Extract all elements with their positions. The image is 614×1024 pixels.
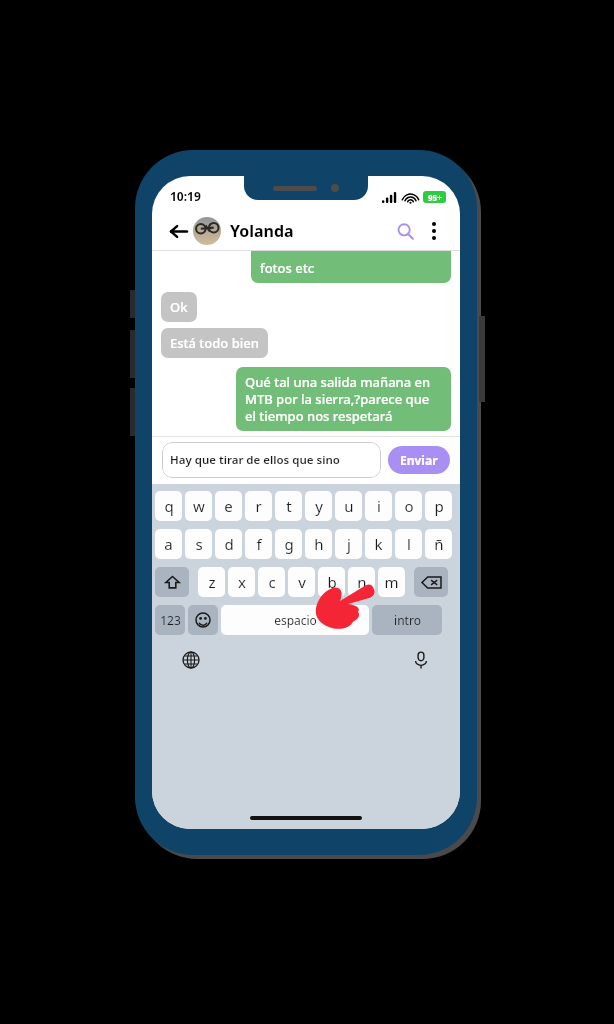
button[interactable] [155,567,189,597]
staticText: f [256,534,262,554]
staticText: p [434,496,444,516]
button[interactable]: f [245,529,272,559]
button[interactable]: w [185,491,212,521]
staticText: espacio [274,612,317,628]
button[interactable]: x [228,567,255,597]
button[interactable]: 123 [155,605,185,635]
staticText: b [327,572,337,592]
button[interactable]: a [155,529,182,559]
button[interactable]: z [198,567,225,597]
button[interactable]: g [275,529,302,559]
staticText: g [284,534,294,554]
button[interactable]: v [288,567,315,597]
button[interactable]: p [425,491,452,521]
button[interactable]: intro [372,605,442,635]
staticText: n [357,572,367,592]
staticText: h [314,534,324,554]
staticText: k [374,534,383,554]
staticText: fotos etc [260,259,315,277]
button[interactable]: b [318,567,345,597]
staticText: Está todo bien [170,334,259,352]
button[interactable]: n [348,567,375,597]
button[interactable]: h [305,529,332,559]
staticText: w [193,496,205,516]
staticText: Ok [170,298,188,316]
button[interactable]: q [155,491,182,521]
staticText: 95+ [428,192,442,203]
button[interactable]: Qué tal una salida mañana en MTB por la … [236,367,451,431]
button[interactable]: Hay que tirar de ellos que sino [162,442,381,478]
button[interactable]: Enviar [388,446,450,474]
staticText: x [238,572,246,592]
button[interactable]: y [305,491,332,521]
staticText: j [347,534,351,554]
staticText: u [344,496,354,516]
staticText: y [315,496,323,516]
button[interactable]: ñ [425,529,452,559]
button[interactable]: m [378,567,405,597]
staticText: t [286,496,292,516]
button[interactable]: c [258,567,285,597]
button[interactable]: i [365,491,392,521]
staticText: s [195,534,203,554]
button[interactable]: Search [391,217,419,245]
staticText: o [404,496,414,516]
button[interactable]: espacio [221,605,369,635]
staticText: v [298,572,306,592]
button[interactable]: Profile photo [193,217,221,245]
button[interactable]: e [215,491,242,521]
button[interactable]: Ok [161,292,197,322]
button[interactable]: d [215,529,242,559]
staticText: z [208,572,216,592]
button[interactable] [188,605,218,635]
staticText: i [377,496,381,516]
staticText: a [164,534,173,554]
button[interactable]: Está todo bien [161,328,268,358]
staticText: Hay que tirar de ellos que sino [170,452,340,468]
staticText: intro [394,612,421,628]
staticText: Qué tal una salida mañana en MTB por la … [245,373,442,425]
staticText: r [255,496,262,516]
staticText: l [407,534,411,554]
staticText: d [224,534,234,554]
button[interactable] [414,567,448,597]
staticText: Yolanda [230,220,391,242]
button[interactable]: k [365,529,392,559]
staticText: e [224,496,233,516]
staticText: ñ [434,534,444,554]
button[interactable]: t [275,491,302,521]
button[interactable]: s [185,529,212,559]
button[interactable]: fotos etc [251,251,451,283]
button[interactable]: r [245,491,272,521]
button[interactable]: Change language [178,647,204,673]
button[interactable]: l [395,529,422,559]
staticText: c [268,572,276,592]
staticText: q [164,496,174,516]
staticText: m [384,572,399,592]
staticText: 123 [160,612,181,628]
button[interactable]: u [335,491,362,521]
button[interactable]: Back [165,218,191,244]
button[interactable]: More options [421,218,447,244]
staticText: Enviar [400,452,438,468]
staticText: 10:19 [170,188,201,204]
button[interactable]: o [395,491,422,521]
button[interactable]: j [335,529,362,559]
button[interactable]: Voice input [408,647,434,673]
